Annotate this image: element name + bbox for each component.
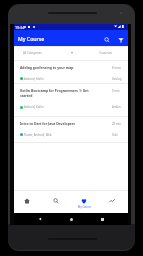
staticText: 8 mins xyxy=(112,66,121,70)
staticText: 5 min xyxy=(112,89,120,93)
button[interactable]: Filter xyxy=(115,34,127,46)
staticText: Tobi xyxy=(112,133,118,137)
staticText: Arduin xyxy=(112,105,121,109)
button[interactable]: Trending xyxy=(105,190,119,212)
button[interactable]: Search xyxy=(101,34,113,46)
button[interactable]: Recent apps xyxy=(97,214,107,224)
button[interactable]: Home xyxy=(20,190,34,212)
button[interactable]: Back xyxy=(35,214,45,224)
button[interactable]: Adding geofencing to your map xyxy=(14,61,128,84)
staticText: Intro to Dart for Java Developers xyxy=(20,121,94,126)
button[interactable]: Search xyxy=(49,190,63,212)
staticText: All Categories xyxy=(23,51,42,55)
button[interactable]: Intro to Dart for Java Developers xyxy=(14,117,128,143)
button[interactable]: Home xyxy=(66,214,76,224)
staticText: Flutter, Android, Web xyxy=(24,133,52,137)
staticText: My Course xyxy=(18,35,45,42)
button[interactable]: Kotlin Bootcamp for Programmers 1: Get s… xyxy=(14,84,128,117)
staticText: Android, Kotlin xyxy=(24,77,44,81)
staticText: Android, Kotlin xyxy=(24,105,44,109)
staticText: Adding geofencing to your map xyxy=(20,65,94,70)
staticText: 28 min xyxy=(112,122,121,126)
staticText: 19:34 xyxy=(15,25,25,30)
staticText: Kotlin Bootcamp for Programmers 1: Get s… xyxy=(20,88,94,98)
button[interactable]: All Categories xyxy=(23,51,73,55)
button[interactable]: My Course xyxy=(77,190,91,212)
staticText: Geolog xyxy=(112,77,122,81)
staticText: 3 courses xyxy=(99,51,112,55)
staticText: My Course xyxy=(78,205,91,209)
